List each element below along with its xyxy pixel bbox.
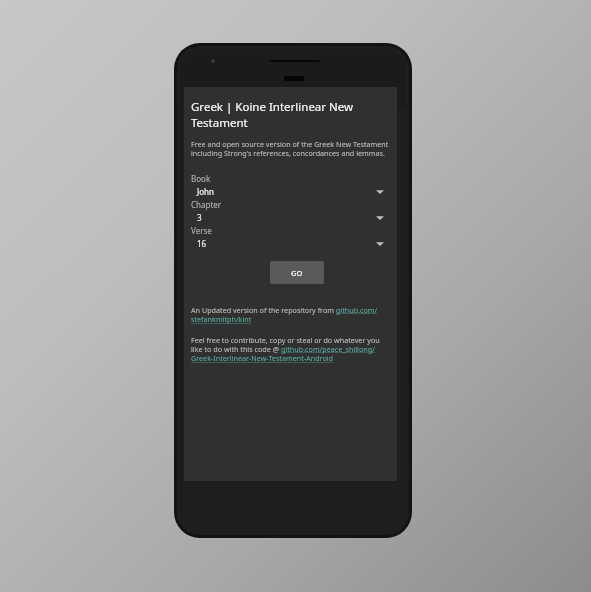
staticText: Free and open source version of the Gree…	[191, 139, 389, 159]
button[interactable]: Feel free to contribute, copy or steal o…	[191, 335, 390, 364]
staticText: GO	[291, 268, 303, 278]
staticText: Verse	[191, 225, 212, 236]
staticText: John	[197, 186, 214, 197]
staticText: Book	[191, 173, 211, 184]
staticText: Greek | Koine Interlinear New Testament	[191, 99, 354, 130]
staticText: 3	[197, 212, 202, 223]
button[interactable]: An Updated version of the repository fro…	[191, 305, 390, 325]
staticText: Feel free to contribute, copy or steal o…	[191, 335, 390, 364]
button[interactable]: GO	[270, 261, 324, 284]
staticText: 16	[197, 238, 207, 249]
button[interactable]: Chapter selector	[191, 210, 390, 225]
staticText: An Updated version of the repository fro…	[191, 305, 390, 325]
button[interactable]: Verse selector	[191, 236, 390, 251]
staticText: Chapter	[191, 199, 222, 210]
button[interactable]: Book selector	[191, 184, 390, 199]
